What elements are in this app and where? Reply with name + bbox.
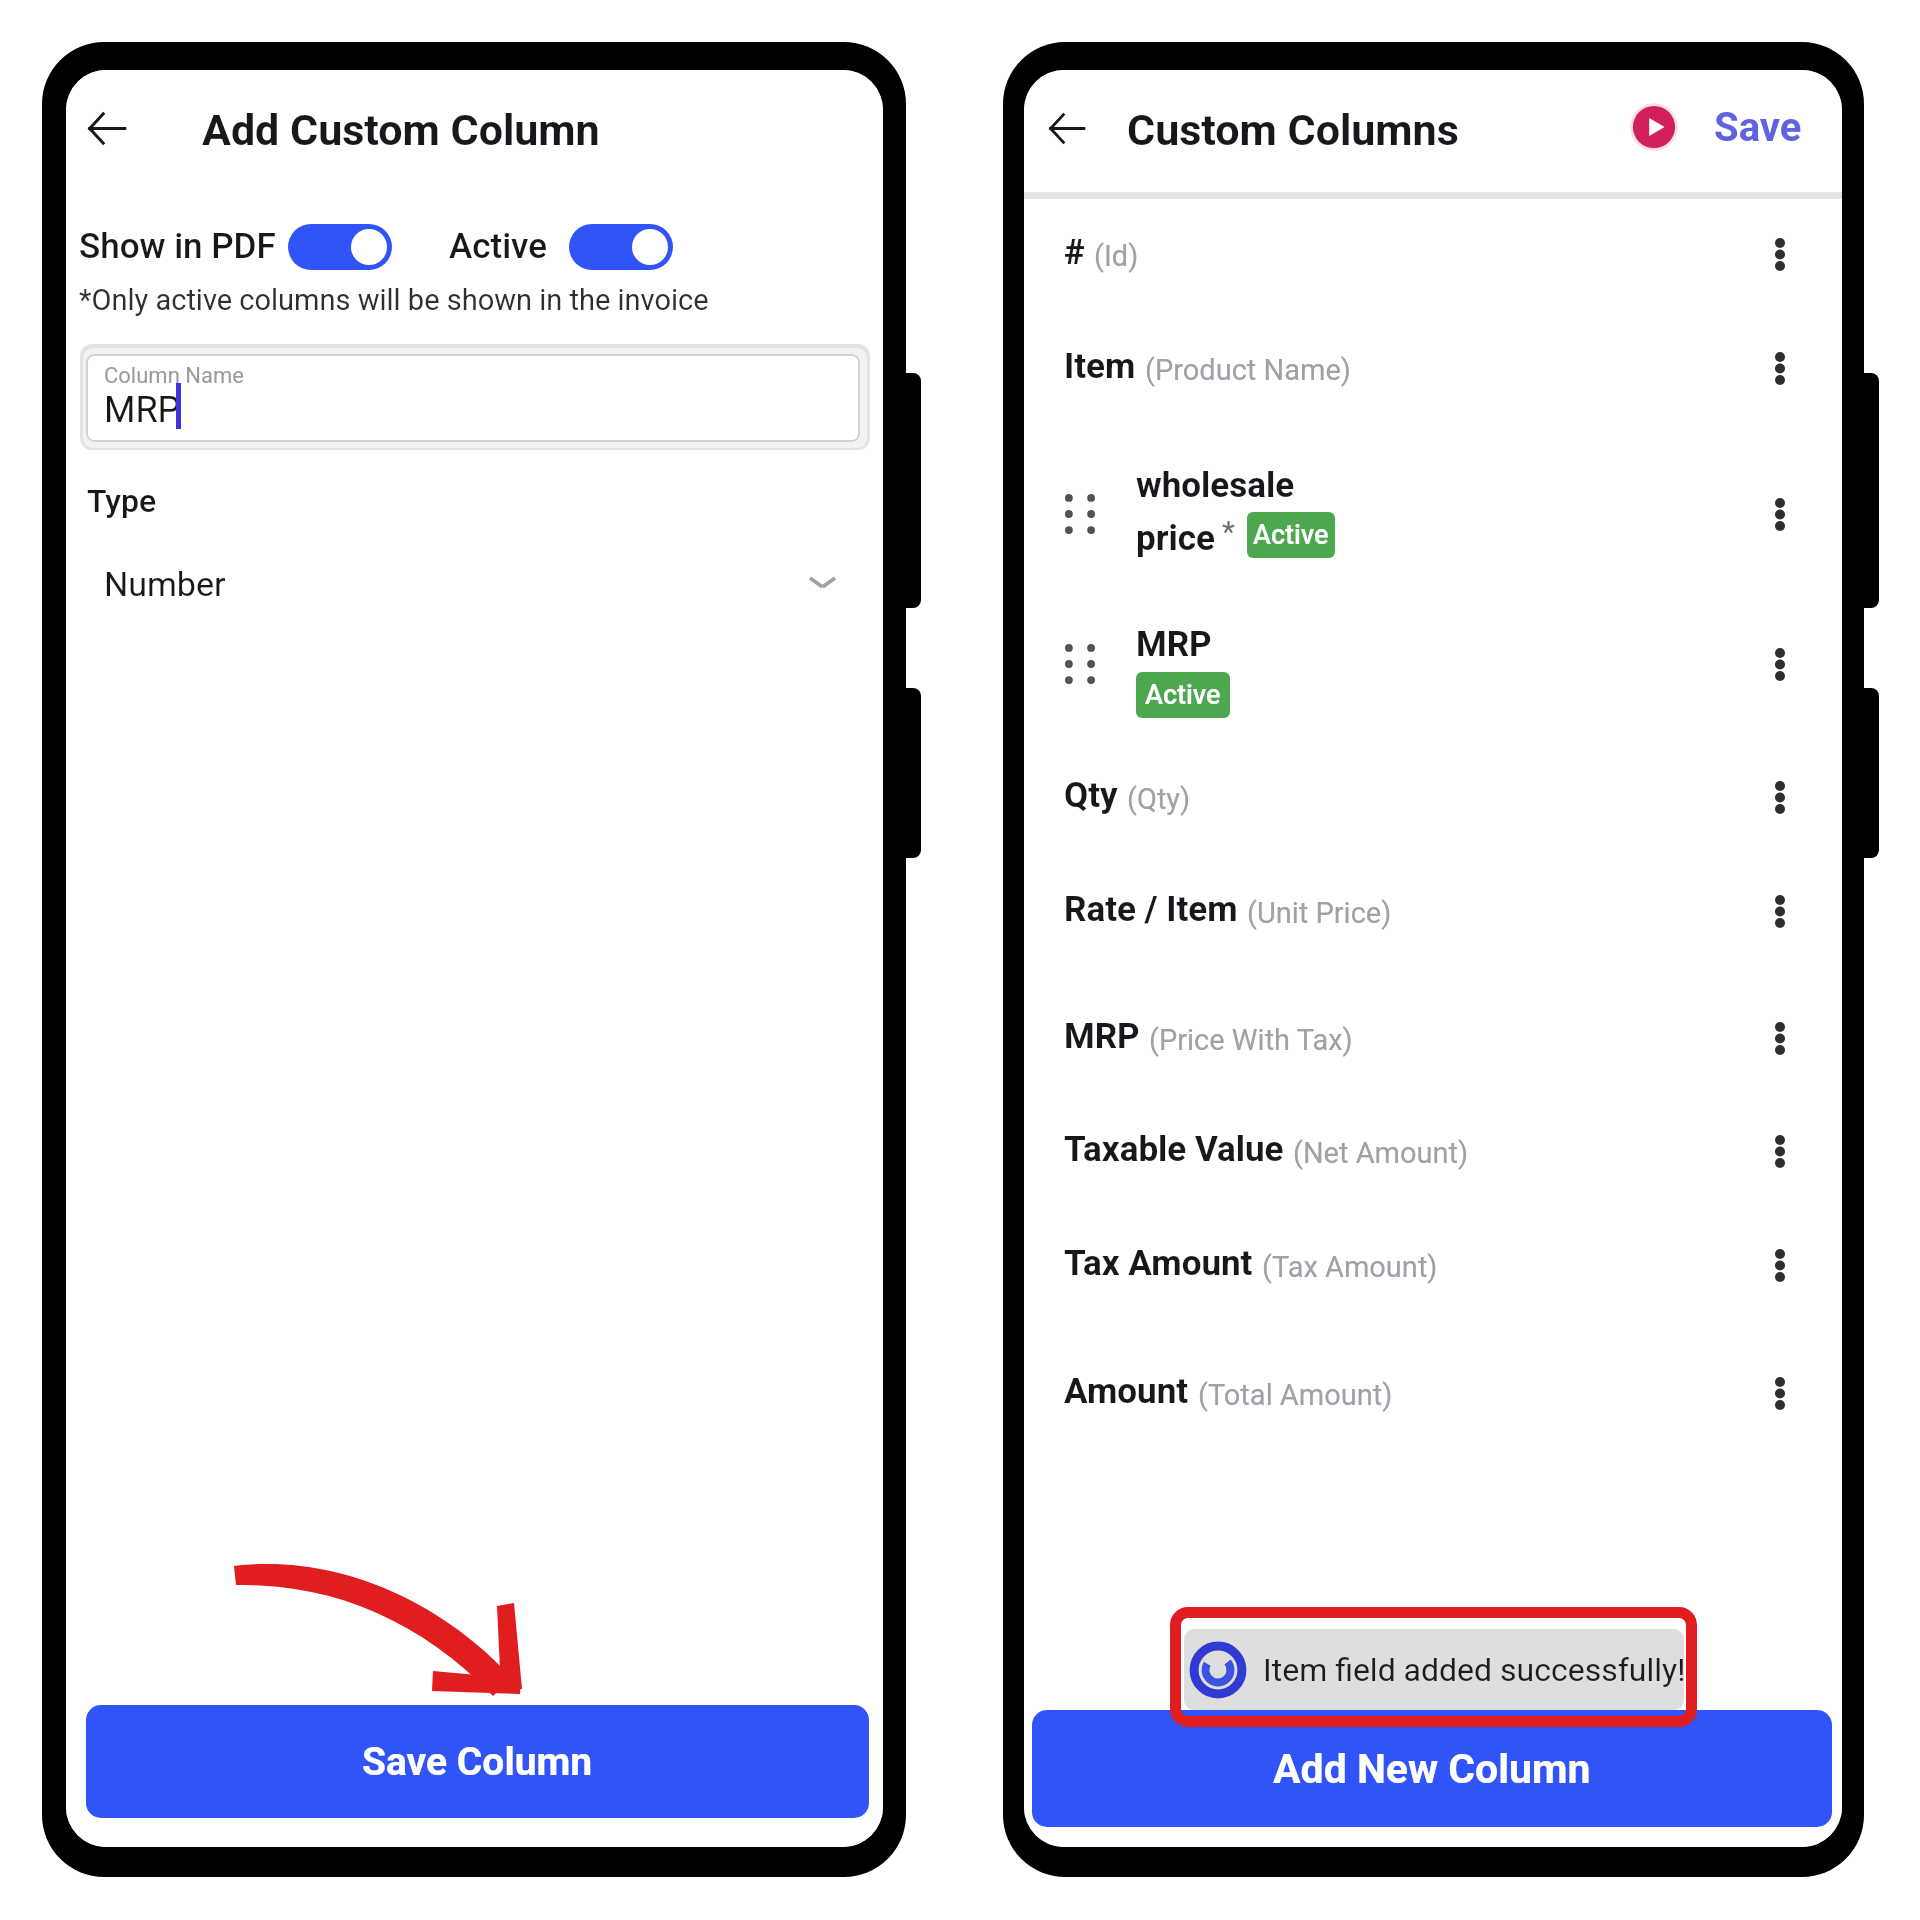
button[interactable]: Column Name: [86, 354, 860, 442]
button[interactable]: More options: [1756, 640, 1804, 688]
button[interactable]: Show in PDF, on: [288, 224, 392, 270]
staticText: Item field added successfully!: [1263, 1651, 1684, 1689]
staticText: MRP: [104, 389, 181, 431]
staticText: (Price With Tax): [1149, 1023, 1353, 1057]
button[interactable]: More options: [1756, 1127, 1804, 1175]
staticText: Rate / Item: [1064, 889, 1238, 930]
staticText: (Id): [1094, 239, 1139, 273]
staticText: Active: [449, 226, 547, 267]
button[interactable]: Save Column: [86, 1705, 869, 1818]
button[interactable]: Save: [1714, 104, 1802, 151]
staticText: Item: [1064, 346, 1136, 387]
button[interactable]: wholesale: [1024, 452, 1842, 576]
staticText: Save Column: [362, 1739, 593, 1785]
staticText: Taxable Value: [1064, 1129, 1284, 1170]
staticText: price: [1136, 518, 1215, 559]
staticText: Number: [104, 564, 226, 604]
button[interactable]: Back: [77, 98, 137, 158]
staticText: Active: [1145, 679, 1221, 711]
button[interactable]: More options: [1756, 1014, 1804, 1062]
staticText: Show in PDF: [79, 226, 276, 267]
staticText: Custom Columns: [1127, 105, 1459, 155]
staticText: Active: [1253, 519, 1329, 551]
staticText: Qty: [1064, 775, 1118, 816]
button[interactable]: More options: [1756, 773, 1804, 821]
staticText: Add New Column: [1273, 1745, 1591, 1793]
button[interactable]: More options: [1756, 887, 1804, 935]
button[interactable]: Amount: [1024, 1331, 1842, 1455]
staticText: (Total Amount): [1198, 1378, 1393, 1412]
button[interactable]: Watch tutorial video: [1630, 103, 1678, 151]
button[interactable]: More options: [1756, 490, 1804, 538]
staticText: Save: [1714, 104, 1802, 151]
staticText: Add Custom Column: [202, 105, 600, 155]
button[interactable]: More options: [1756, 344, 1804, 392]
button[interactable]: More options: [1756, 1369, 1804, 1417]
staticText: *Only active columns will be shown in th…: [79, 283, 709, 317]
staticText: (Unit Price): [1247, 896, 1392, 930]
button[interactable]: Number: [86, 540, 860, 618]
button[interactable]: More options: [1756, 1241, 1804, 1289]
button[interactable]: Rate / Item: [1024, 849, 1842, 973]
staticText: (Net Amount): [1293, 1136, 1469, 1170]
button[interactable]: #: [1024, 192, 1842, 316]
staticText: Type: [87, 482, 157, 520]
staticText: MRP: [1136, 624, 1212, 665]
staticText: (Tax Amount): [1262, 1250, 1438, 1284]
staticText: *: [1222, 514, 1235, 549]
staticText: wholesale: [1136, 465, 1295, 506]
staticText: Amount: [1064, 1371, 1189, 1412]
staticText: #: [1064, 232, 1085, 273]
button[interactable]: Tax Amount: [1024, 1203, 1842, 1327]
button[interactable]: Qty: [1024, 735, 1842, 859]
staticText: Column Name: [104, 363, 244, 389]
button[interactable]: Add New Column: [1032, 1710, 1832, 1827]
button[interactable]: Active, on: [569, 224, 673, 270]
button[interactable]: Taxable Value: [1024, 1089, 1842, 1213]
button[interactable]: Back: [1037, 98, 1097, 158]
button[interactable]: More options: [1756, 230, 1804, 278]
staticText: (Product Name): [1145, 353, 1351, 387]
button[interactable]: Item: [1024, 306, 1842, 430]
staticText: Tax Amount: [1064, 1243, 1253, 1284]
button[interactable]: MRP: [1024, 602, 1842, 726]
button[interactable]: MRP: [1024, 976, 1842, 1100]
staticText: MRP: [1064, 1016, 1140, 1057]
staticText: (Qty): [1127, 782, 1191, 816]
